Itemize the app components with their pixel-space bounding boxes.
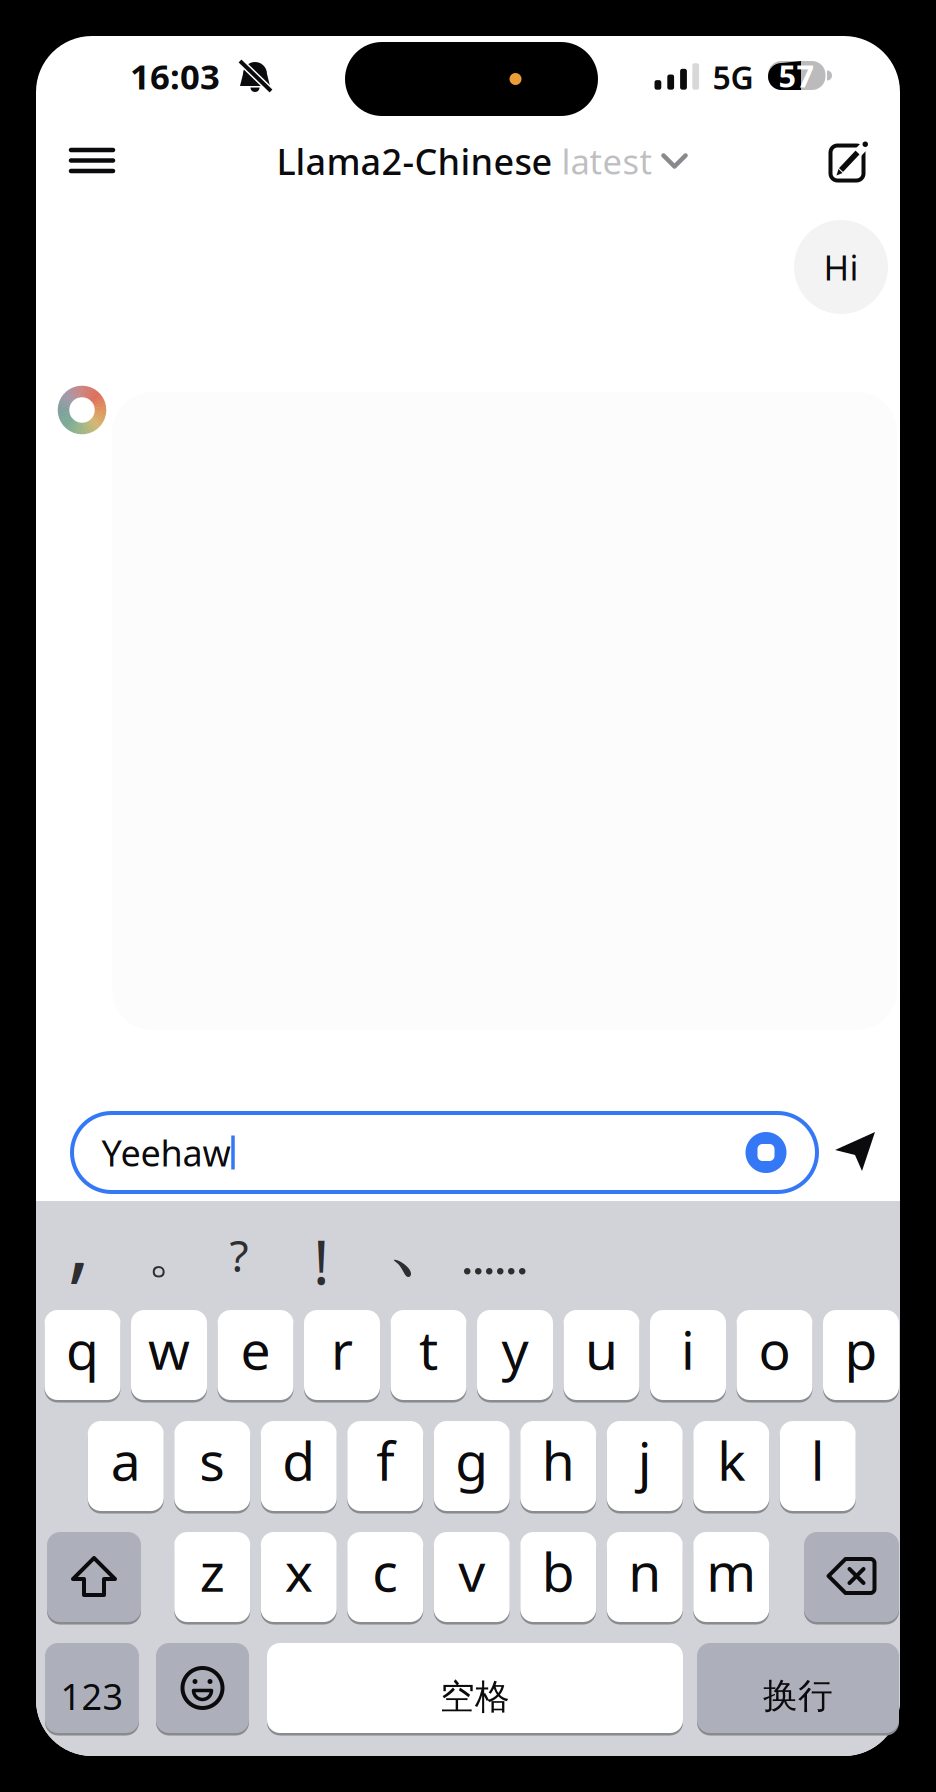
staticText: 57 <box>778 55 814 96</box>
staticText: h <box>542 1425 575 1495</box>
staticText: 123 <box>60 1672 123 1720</box>
staticText: 16:03 <box>130 53 220 99</box>
button[interactable]: l <box>780 1421 856 1511</box>
button[interactable]: s <box>174 1421 250 1511</box>
button[interactable]: Select model <box>276 137 687 185</box>
staticText: i <box>681 1314 695 1384</box>
staticText: t <box>419 1314 438 1384</box>
button[interactable]: question mark <box>204 1225 274 1285</box>
staticText: Yeehaw <box>101 1129 230 1176</box>
staticText: 。 <box>147 1221 200 1287</box>
staticText: z <box>200 1536 225 1606</box>
staticText: 5G <box>712 56 753 98</box>
button[interactable]: Emoji <box>156 1643 249 1733</box>
button[interactable]: Shift <box>47 1532 141 1622</box>
button[interactable]: h <box>520 1421 596 1511</box>
staticText: g <box>455 1425 488 1495</box>
staticText: x <box>285 1536 313 1606</box>
button[interactable]: o <box>736 1310 812 1400</box>
button[interactable]: t <box>390 1310 466 1400</box>
button[interactable]: d <box>261 1421 337 1511</box>
button[interactable]: j <box>607 1421 683 1511</box>
button[interactable]: exclamation mark <box>286 1231 356 1291</box>
button[interactable]: e <box>217 1310 293 1400</box>
staticText: c <box>372 1536 398 1606</box>
staticText: r <box>331 1314 353 1384</box>
staticText: w <box>148 1314 190 1384</box>
staticText: d <box>282 1425 315 1495</box>
button[interactable]: v <box>434 1532 510 1622</box>
staticText: k <box>717 1425 745 1495</box>
staticText: 空格 <box>440 1676 510 1718</box>
button[interactable]: a <box>88 1421 164 1511</box>
button[interactable]: m <box>693 1532 769 1622</box>
button[interactable]: period <box>139 1224 209 1284</box>
staticText: e <box>240 1314 270 1384</box>
button[interactable]: q <box>44 1310 120 1400</box>
staticText: Hi <box>823 244 858 290</box>
staticText: a <box>111 1425 141 1495</box>
button[interactable]: c <box>347 1532 423 1622</box>
button[interactable]: u <box>563 1310 639 1400</box>
button[interactable]: n <box>607 1532 683 1622</box>
button[interactable]: Space <box>267 1643 683 1733</box>
staticText: Llama2-Chinese <box>276 137 552 185</box>
staticText: s <box>199 1425 225 1495</box>
staticText: latest <box>561 138 652 184</box>
button[interactable]: Numbers <box>45 1643 139 1733</box>
button[interactable]: comma <box>44 1210 114 1270</box>
staticText: j <box>638 1425 652 1495</box>
button[interactable]: Send <box>835 1132 877 1174</box>
button[interactable]: enumeration comma <box>393 1208 463 1268</box>
staticText: p <box>844 1314 877 1384</box>
staticText: ! <box>313 1220 329 1302</box>
staticText: 换行 <box>763 1675 833 1717</box>
staticText: o <box>758 1314 790 1384</box>
staticText: u <box>585 1314 618 1384</box>
button[interactable]: x <box>261 1532 337 1622</box>
staticText: q <box>66 1314 99 1384</box>
button[interactable]: i <box>650 1310 726 1400</box>
staticText: l <box>811 1425 825 1495</box>
button[interactable]: p <box>823 1310 899 1400</box>
button[interactable]: Delete <box>804 1532 899 1622</box>
staticText: m <box>706 1536 756 1606</box>
staticText: f <box>376 1425 394 1495</box>
staticText: 、 <box>385 1186 470 1290</box>
button[interactable]: Message field <box>72 1113 817 1192</box>
button[interactable]: r <box>304 1310 380 1400</box>
button[interactable]: g <box>434 1421 510 1511</box>
button[interactable]: New chat <box>829 139 873 183</box>
button[interactable]: w <box>131 1310 207 1400</box>
button[interactable]: Return <box>697 1643 899 1733</box>
button[interactable]: Menu <box>69 147 115 174</box>
button[interactable]: k <box>693 1421 769 1511</box>
staticText: v <box>458 1536 485 1606</box>
button[interactable]: f <box>347 1421 423 1511</box>
button[interactable]: Stop generating <box>745 1132 786 1173</box>
staticText: b <box>542 1536 575 1606</box>
button[interactable]: ellipsis <box>461 1261 525 1281</box>
button[interactable]: y <box>477 1310 553 1400</box>
staticText: y <box>501 1314 528 1384</box>
staticText: n <box>628 1536 661 1606</box>
staticText: , <box>67 1183 90 1297</box>
button[interactable]: z <box>174 1532 250 1622</box>
button[interactable]: b <box>520 1532 596 1622</box>
staticText: ? <box>229 1226 248 1284</box>
